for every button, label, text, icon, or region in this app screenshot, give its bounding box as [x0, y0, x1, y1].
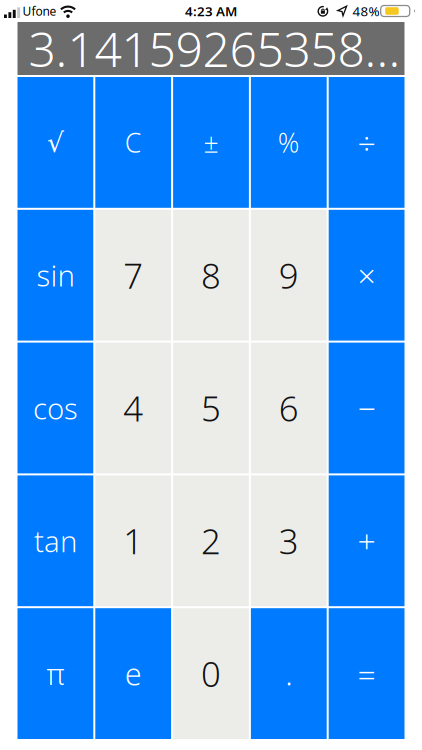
staticText: C: [125, 125, 142, 160]
button[interactable]: √: [17, 77, 93, 208]
staticText: 0: [201, 651, 221, 697]
staticText: 3.14159265358...: [28, 17, 400, 80]
staticText: cos: [33, 388, 78, 427]
button[interactable]: 3: [251, 475, 327, 606]
staticText: .: [285, 653, 292, 694]
staticText: 3: [279, 518, 299, 564]
staticText: Ufone: [22, 3, 56, 19]
button[interactable]: π: [17, 608, 93, 739]
staticText: 4: [123, 385, 143, 431]
button[interactable]: 1: [95, 475, 171, 606]
button[interactable]: C: [95, 77, 171, 208]
button[interactable]: 7: [95, 210, 171, 341]
staticText: 6: [279, 385, 299, 431]
staticText: 4:23 AM: [185, 2, 237, 20]
staticText: π: [46, 654, 64, 693]
button[interactable]: .: [251, 608, 327, 739]
staticText: sin: [36, 256, 74, 295]
button[interactable]: ±: [173, 77, 249, 208]
button[interactable]: tan: [17, 475, 93, 606]
staticText: ×: [358, 254, 376, 296]
staticText: tan: [34, 521, 77, 560]
button[interactable]: +: [329, 475, 404, 606]
button[interactable]: −: [329, 343, 404, 473]
staticText: 9: [279, 252, 299, 298]
button[interactable]: 9: [251, 210, 327, 341]
staticText: =: [358, 652, 376, 695]
staticText: 2: [201, 518, 221, 564]
button[interactable]: =: [329, 608, 404, 739]
staticText: %: [278, 125, 300, 160]
staticText: 5: [201, 385, 221, 431]
button[interactable]: 2: [173, 475, 249, 606]
staticText: 8: [201, 252, 221, 298]
staticText: 1: [123, 518, 143, 564]
staticText: √: [47, 127, 64, 158]
staticText: ÷: [358, 121, 376, 164]
button[interactable]: sin: [17, 210, 93, 341]
button[interactable]: cos: [17, 343, 93, 473]
button[interactable]: ÷: [329, 77, 404, 208]
button[interactable]: 5: [173, 343, 249, 473]
button[interactable]: ×: [329, 210, 404, 341]
staticText: ±: [203, 125, 218, 160]
staticText: 7: [123, 252, 143, 298]
button[interactable]: 6: [251, 343, 327, 473]
button[interactable]: e: [95, 608, 171, 739]
staticText: e: [125, 653, 142, 694]
staticText: −: [358, 387, 376, 429]
staticText: 48%: [352, 2, 379, 20]
button[interactable]: %: [251, 77, 327, 208]
button[interactable]: 0: [173, 608, 249, 739]
button[interactable]: 4: [95, 343, 171, 473]
staticText: +: [358, 520, 376, 562]
button[interactable]: 8: [173, 210, 249, 341]
